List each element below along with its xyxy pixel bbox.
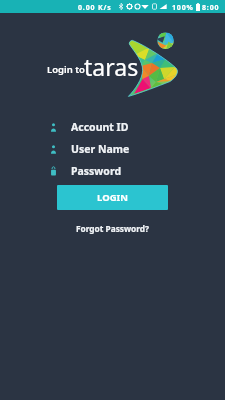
staticText: LOGIN	[97, 191, 128, 204]
staticText: Password	[71, 164, 122, 178]
button[interactable]: Forgot Password?	[74, 221, 152, 236]
staticText: Login to	[47, 63, 85, 76]
staticText: 8:00	[202, 3, 220, 13]
staticText: taras	[84, 51, 139, 82]
staticText: 0.00 K/s	[78, 3, 112, 13]
staticText: User Name	[71, 142, 130, 156]
button[interactable]: User Name	[0, 138, 225, 160]
button[interactable]: Account ID	[0, 116, 225, 138]
button[interactable]: Password	[0, 160, 225, 182]
staticText: Account ID	[71, 120, 129, 134]
staticText: 100%	[172, 3, 194, 13]
button[interactable]: LOGIN	[57, 185, 168, 210]
